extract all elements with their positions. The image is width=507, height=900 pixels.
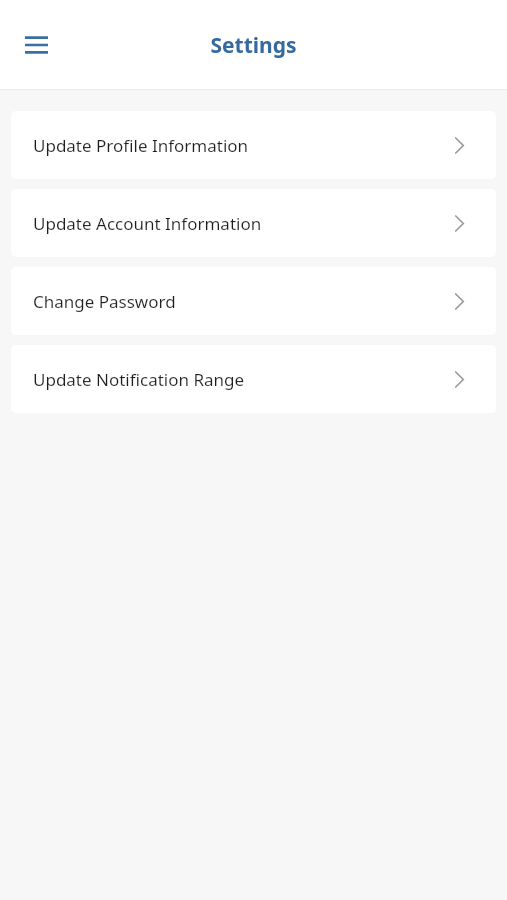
button[interactable]: Update Notification Range <box>11 345 496 413</box>
button[interactable]: Update Account Information <box>11 189 496 257</box>
button[interactable]: Open navigation menu <box>12 21 60 69</box>
button[interactable]: Update Profile Information <box>11 111 496 179</box>
staticText: Update Profile Information <box>33 134 249 157</box>
staticText: Settings <box>210 31 297 60</box>
staticText: Update Account Information <box>33 212 262 235</box>
button[interactable]: Change Password <box>11 267 496 335</box>
staticText: Change Password <box>33 290 176 313</box>
staticText: Update Notification Range <box>33 368 245 391</box>
